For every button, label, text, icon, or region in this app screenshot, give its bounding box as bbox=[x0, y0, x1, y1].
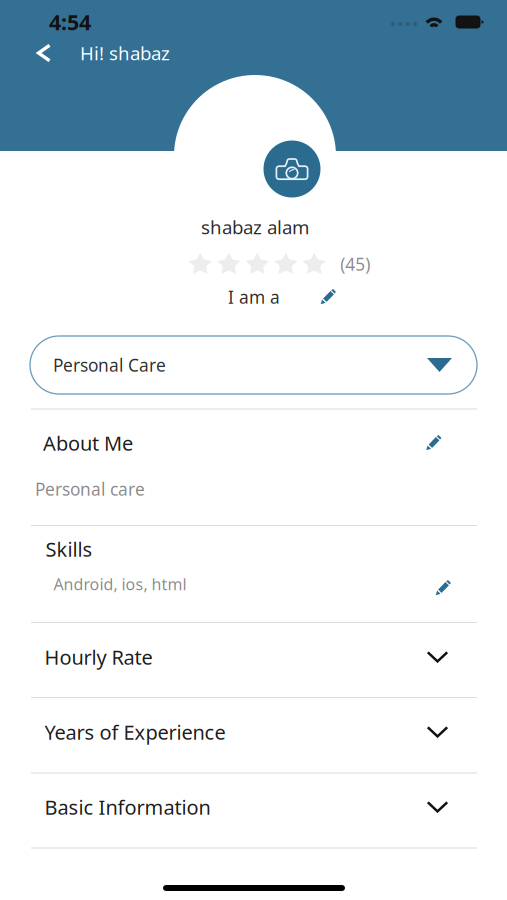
staticText: I am a bbox=[228, 285, 280, 308]
button[interactable]: Personal Care bbox=[30, 336, 477, 394]
staticText: Personal Care bbox=[53, 353, 166, 376]
staticText: Skills bbox=[45, 536, 92, 562]
button[interactable]: About Me bbox=[43, 420, 443, 466]
staticText: About Me bbox=[43, 430, 133, 456]
staticText: Hourly Rate bbox=[44, 644, 152, 670]
button[interactable]: Back bbox=[22, 33, 66, 73]
staticText: Android, ios, html bbox=[53, 573, 186, 595]
button[interactable]: Change profile photo bbox=[263, 140, 320, 197]
button[interactable]: Edit skills bbox=[426, 572, 460, 604]
staticText: 4:54 bbox=[49, 8, 91, 36]
button[interactable]: Years of Experience bbox=[44, 695, 448, 769]
button[interactable]: Edit role bbox=[311, 281, 345, 313]
staticText: shabaz alam bbox=[201, 215, 309, 239]
button[interactable]: Hourly Rate bbox=[44, 620, 448, 694]
staticText: (45) bbox=[340, 252, 370, 275]
staticText: Hi! shabaz bbox=[80, 41, 170, 65]
button[interactable]: Basic Information bbox=[44, 770, 448, 844]
staticText: Years of Experience bbox=[44, 719, 225, 745]
staticText: Basic Information bbox=[44, 794, 210, 820]
staticText: Personal care bbox=[35, 477, 145, 500]
